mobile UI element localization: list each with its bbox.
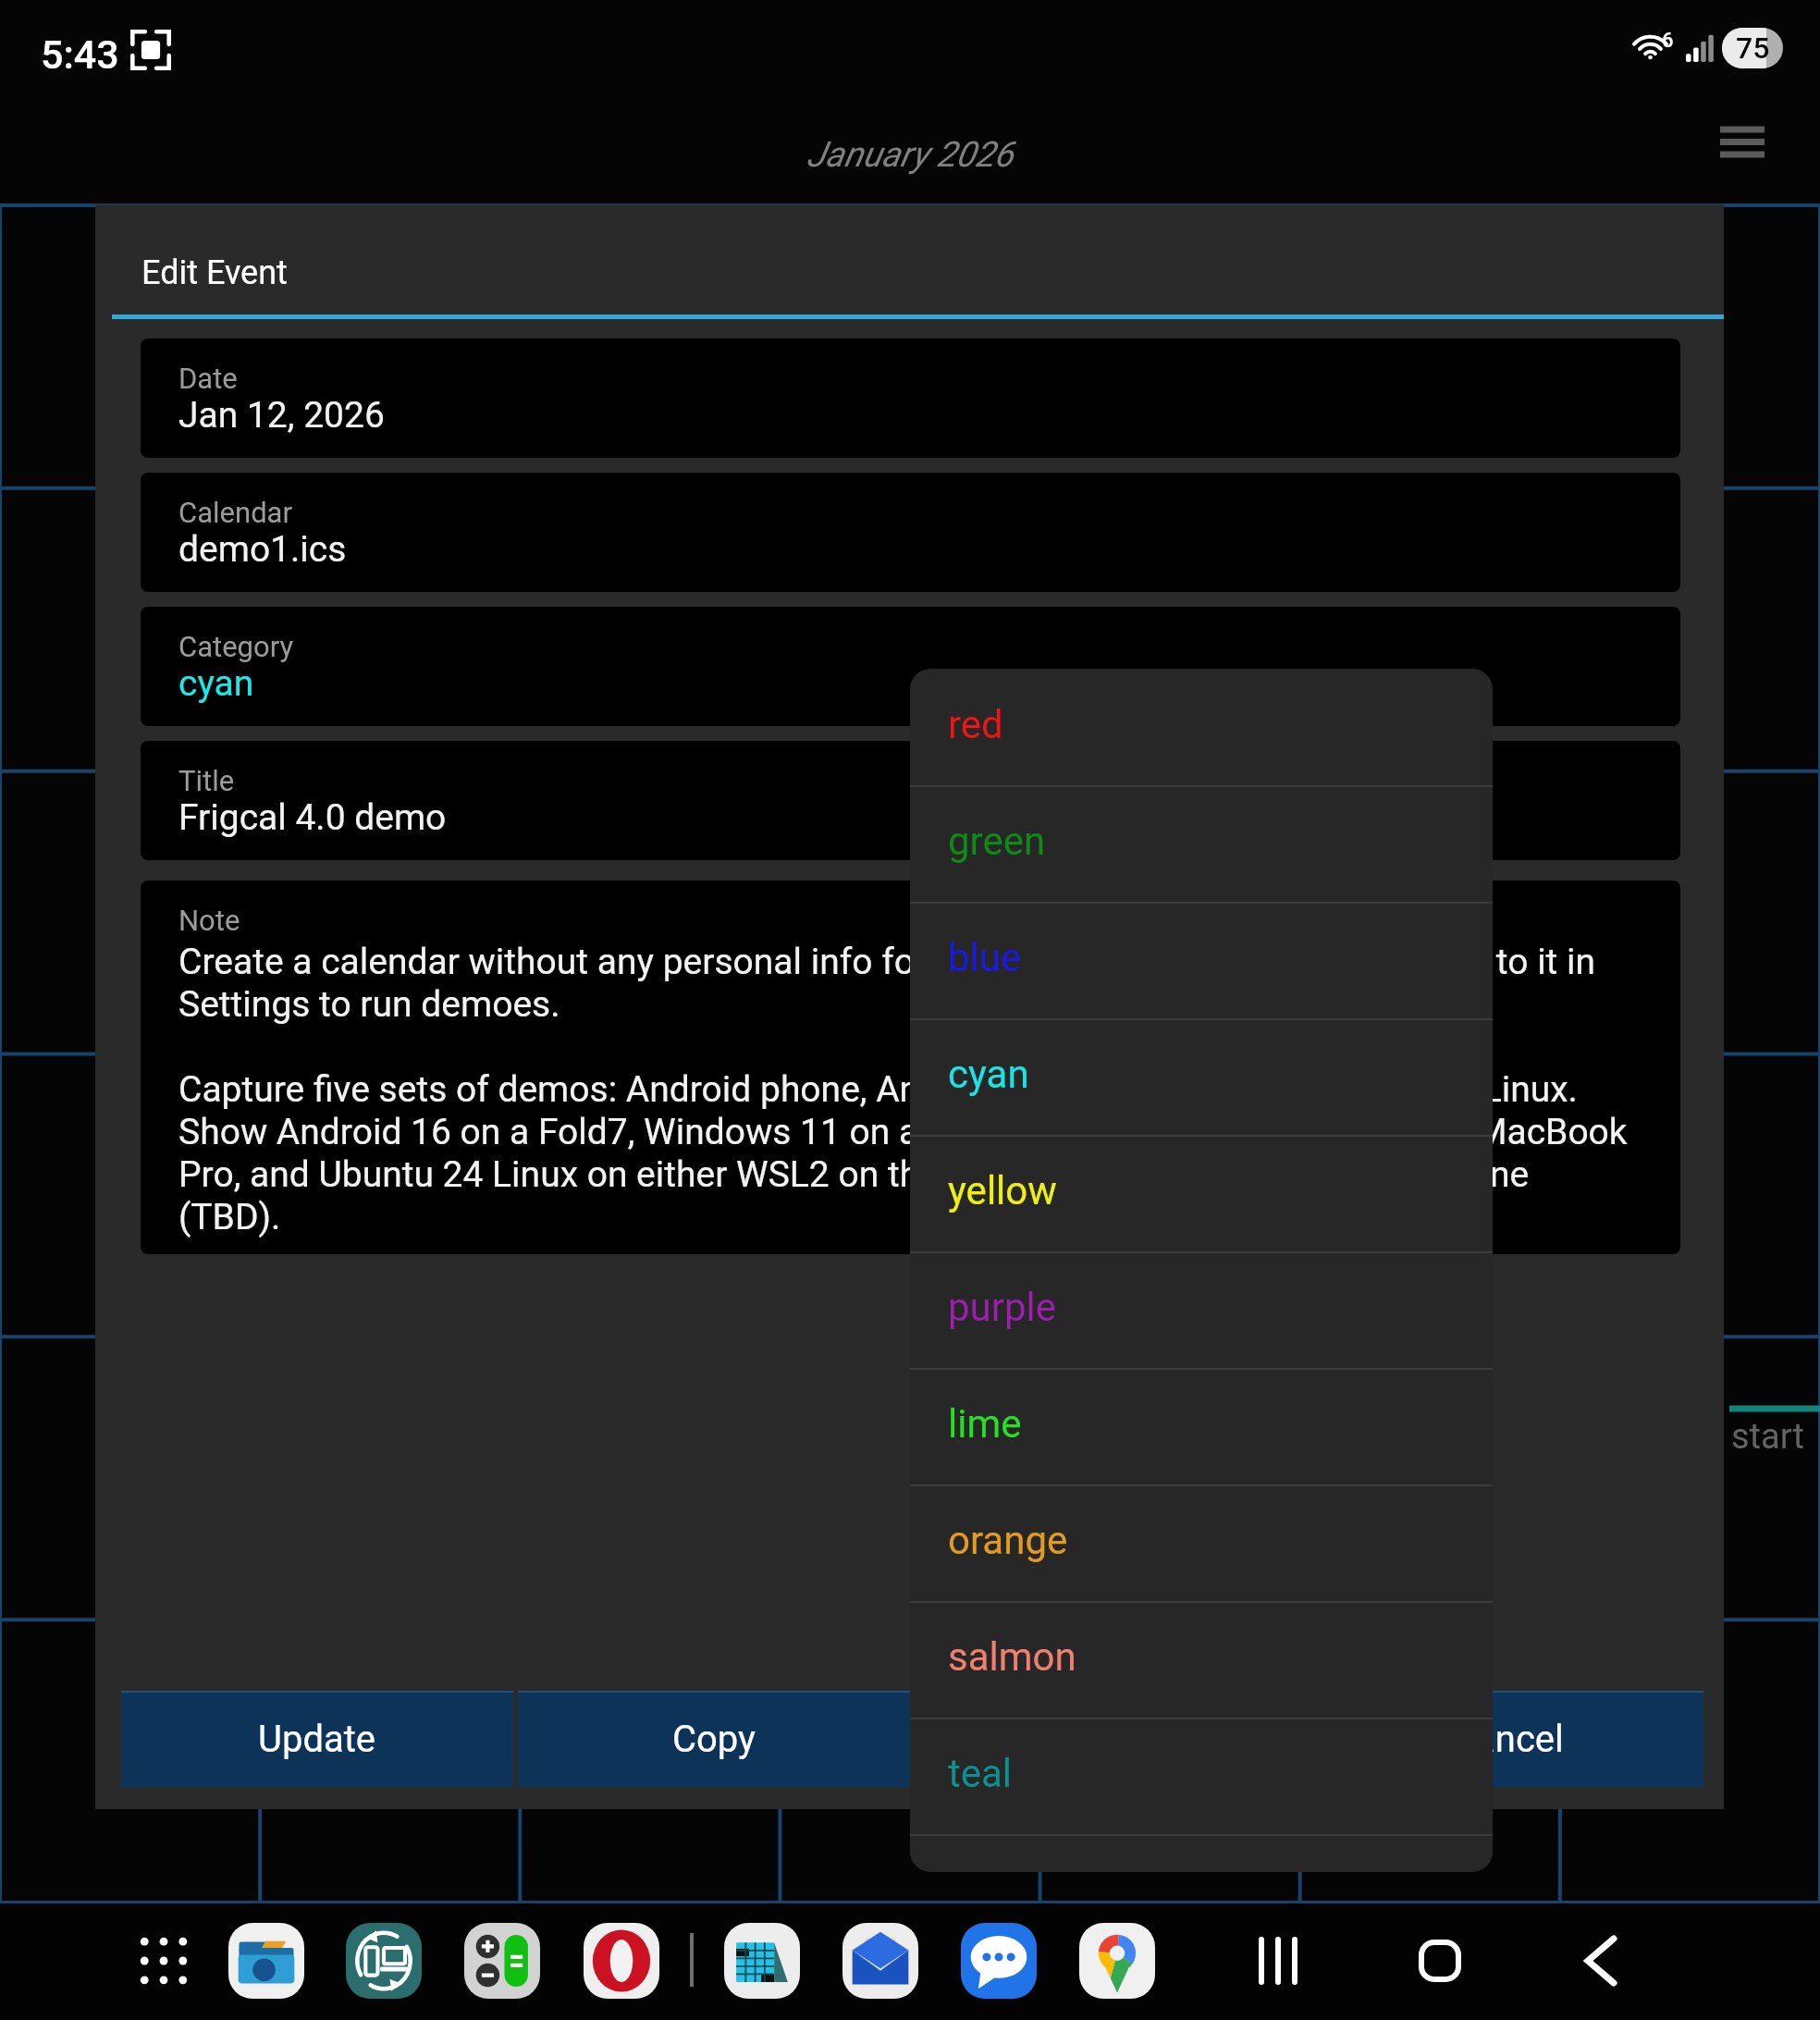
- button[interactable]: File manager: [228, 1923, 304, 1999]
- button[interactable]: Apps: [122, 1919, 205, 2002]
- staticText: lime: [948, 1401, 1022, 1447]
- button[interactable]: Calendar: [141, 473, 1680, 592]
- staticText: Cancel: [1451, 1718, 1564, 1761]
- staticText: Delete: [1059, 1718, 1163, 1761]
- staticText: green: [948, 819, 1046, 864]
- button[interactable]: orange: [910, 1484, 1493, 1601]
- button[interactable]: yellow: [910, 1135, 1493, 1251]
- staticText: Category: [178, 630, 294, 663]
- button[interactable]: Back: [1555, 1915, 1647, 2007]
- staticText: yellow: [948, 1168, 1057, 1213]
- staticText: teal: [948, 1751, 1013, 1796]
- button[interactable]: Calculator: [464, 1923, 540, 1999]
- staticText: Edit Event: [141, 253, 288, 292]
- staticText: Note: [178, 904, 240, 937]
- button[interactable]: Delete: [915, 1691, 1307, 1787]
- button[interactable]: Recents: [1232, 1915, 1324, 2007]
- button[interactable]: cyan: [910, 1018, 1493, 1135]
- button[interactable]: teal: [910, 1718, 1493, 1834]
- button[interactable]: Copy: [518, 1691, 910, 1787]
- staticText: blue: [948, 935, 1022, 980]
- staticText: start: [1731, 1416, 1804, 1458]
- staticText: purple: [948, 1285, 1057, 1330]
- button[interactable]: Note: [141, 881, 1680, 1254]
- staticText: cyan: [948, 1052, 1029, 1097]
- button[interactable]: Cancel: [1311, 1691, 1703, 1787]
- staticText: 75: [1736, 31, 1770, 66]
- staticText: demo1.ics: [178, 528, 347, 571]
- staticText: salmon: [948, 1634, 1076, 1680]
- staticText: Create a calendar without any personal i…: [178, 941, 1677, 1238]
- staticText: cyan: [178, 662, 254, 705]
- staticText: Jan 12, 2026: [178, 394, 385, 437]
- button[interactable]: Opera browser: [584, 1923, 659, 1999]
- staticText: Title: [178, 764, 235, 797]
- staticText: Update: [258, 1718, 376, 1761]
- staticText: Date: [178, 362, 238, 395]
- staticText: 5:43: [41, 31, 119, 78]
- button[interactable]: blue: [910, 902, 1493, 1018]
- button[interactable]: salmon: [910, 1601, 1493, 1718]
- staticText: 6: [1662, 29, 1674, 53]
- button[interactable]: Maps: [1079, 1923, 1155, 1999]
- button[interactable]: green: [910, 785, 1493, 902]
- staticText: Copy: [672, 1718, 756, 1761]
- button[interactable]: Mail: [842, 1923, 918, 1999]
- staticText: orange: [948, 1518, 1068, 1563]
- staticText: Calendar: [178, 496, 292, 529]
- button[interactable]: Title: [141, 741, 1680, 860]
- button[interactable]: Update: [121, 1691, 513, 1787]
- staticText: Frigcal 4.0 demo: [178, 796, 447, 839]
- button[interactable]: Menu: [1698, 105, 1787, 179]
- button[interactable]: Calendar: [724, 1923, 800, 1999]
- button[interactable]: red: [910, 669, 1493, 785]
- button[interactable]: Phone link: [346, 1923, 422, 1999]
- button[interactable]: lime: [910, 1368, 1493, 1484]
- button[interactable]: Date: [141, 339, 1680, 458]
- staticText: January 2026: [806, 134, 1014, 176]
- button[interactable]: Messages: [961, 1923, 1037, 1999]
- button[interactable]: Home: [1394, 1915, 1486, 2007]
- staticText: red: [948, 702, 1003, 747]
- button[interactable]: Category: [141, 607, 1680, 726]
- button[interactable]: purple: [910, 1251, 1493, 1368]
